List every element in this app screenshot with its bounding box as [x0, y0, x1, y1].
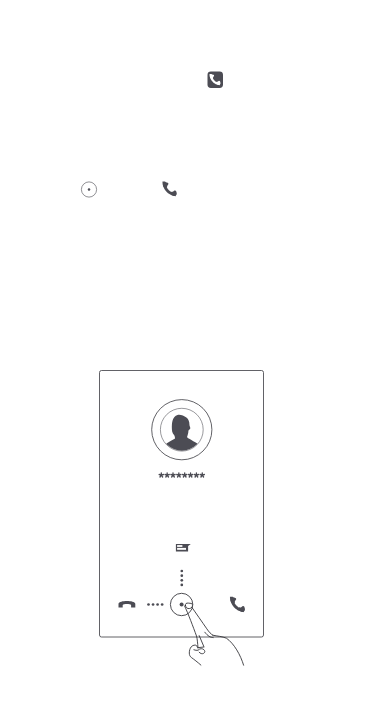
button[interactable]: Record call — [80, 181, 98, 199]
button[interactable]: Call — [155, 175, 183, 203]
button[interactable]: Swipe to answer — [168, 591, 196, 619]
button[interactable]: Phone app — [203, 67, 227, 93]
button[interactable]: Send message — [170, 537, 196, 559]
button[interactable]: Decline call — [114, 594, 140, 616]
button[interactable]: Answer call — [226, 592, 252, 616]
